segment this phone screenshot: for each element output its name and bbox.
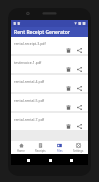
button[interactable]: Delete <box>64 46 72 54</box>
button[interactable]: Files <box>50 141 69 154</box>
button[interactable]: Share <box>75 103 83 111</box>
staticText: Settings <box>73 149 84 153</box>
button[interactable]: Back <box>24 156 32 164</box>
button[interactable]: Share <box>75 122 83 130</box>
button[interactable]: Receipts <box>31 141 50 154</box>
button[interactable]: Delete <box>64 84 72 92</box>
staticText: Receipts <box>35 149 46 153</box>
button[interactable]: rental-rental-7.pdf <box>11 113 88 130</box>
button[interactable]: Home <box>11 141 31 154</box>
button[interactable]: Share <box>75 65 83 73</box>
button[interactable]: Delete <box>64 103 72 111</box>
button[interactable]: rental-rental-5.pdf <box>11 94 88 111</box>
button[interactable]: testinvoice-1.pdf <box>11 56 88 73</box>
button[interactable]: Recents <box>67 156 75 164</box>
staticText: testinvoice-1.pdf <box>14 60 42 65</box>
button[interactable]: rental-rental-4.pdf <box>11 75 88 92</box>
staticText: Home <box>17 149 25 153</box>
staticText: Files <box>57 149 63 153</box>
button[interactable]: Home <box>46 156 54 164</box>
staticText: rental-rental-5.pdf <box>14 98 44 103</box>
staticText: rental-receipt-3.pdf <box>14 41 46 46</box>
button[interactable]: Share <box>75 46 83 54</box>
button[interactable]: Delete <box>64 122 72 130</box>
button[interactable]: Share <box>75 84 83 92</box>
staticText: Rent Receipt Generator <box>14 29 70 36</box>
staticText: rental-rental-7.pdf <box>14 117 44 122</box>
staticText: rental-rental-4.pdf <box>14 79 44 84</box>
button[interactable]: rental-receipt-3.pdf <box>11 37 88 54</box>
button[interactable]: Delete <box>64 65 72 73</box>
button[interactable]: Settings <box>69 141 88 154</box>
